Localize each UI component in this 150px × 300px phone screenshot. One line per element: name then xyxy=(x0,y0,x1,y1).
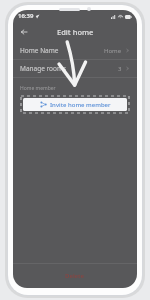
button[interactable]: Delete xyxy=(13,264,137,288)
staticText: Invite home member xyxy=(50,101,111,109)
staticText: Home xyxy=(104,47,122,55)
button[interactable]: Invite home member xyxy=(21,96,129,113)
button[interactable]: Home Name xyxy=(13,42,137,59)
staticText: Edit home xyxy=(57,27,94,37)
button[interactable]: Back xyxy=(16,24,32,40)
staticText: 3 xyxy=(118,65,122,73)
staticText: Manage rooms xyxy=(20,64,67,73)
staticText: Home Name xyxy=(20,46,59,55)
staticText: Delete xyxy=(65,272,85,280)
staticText: 16:39 xyxy=(18,12,34,20)
staticText: Home member xyxy=(20,85,56,92)
button[interactable]: Manage rooms xyxy=(13,60,137,77)
